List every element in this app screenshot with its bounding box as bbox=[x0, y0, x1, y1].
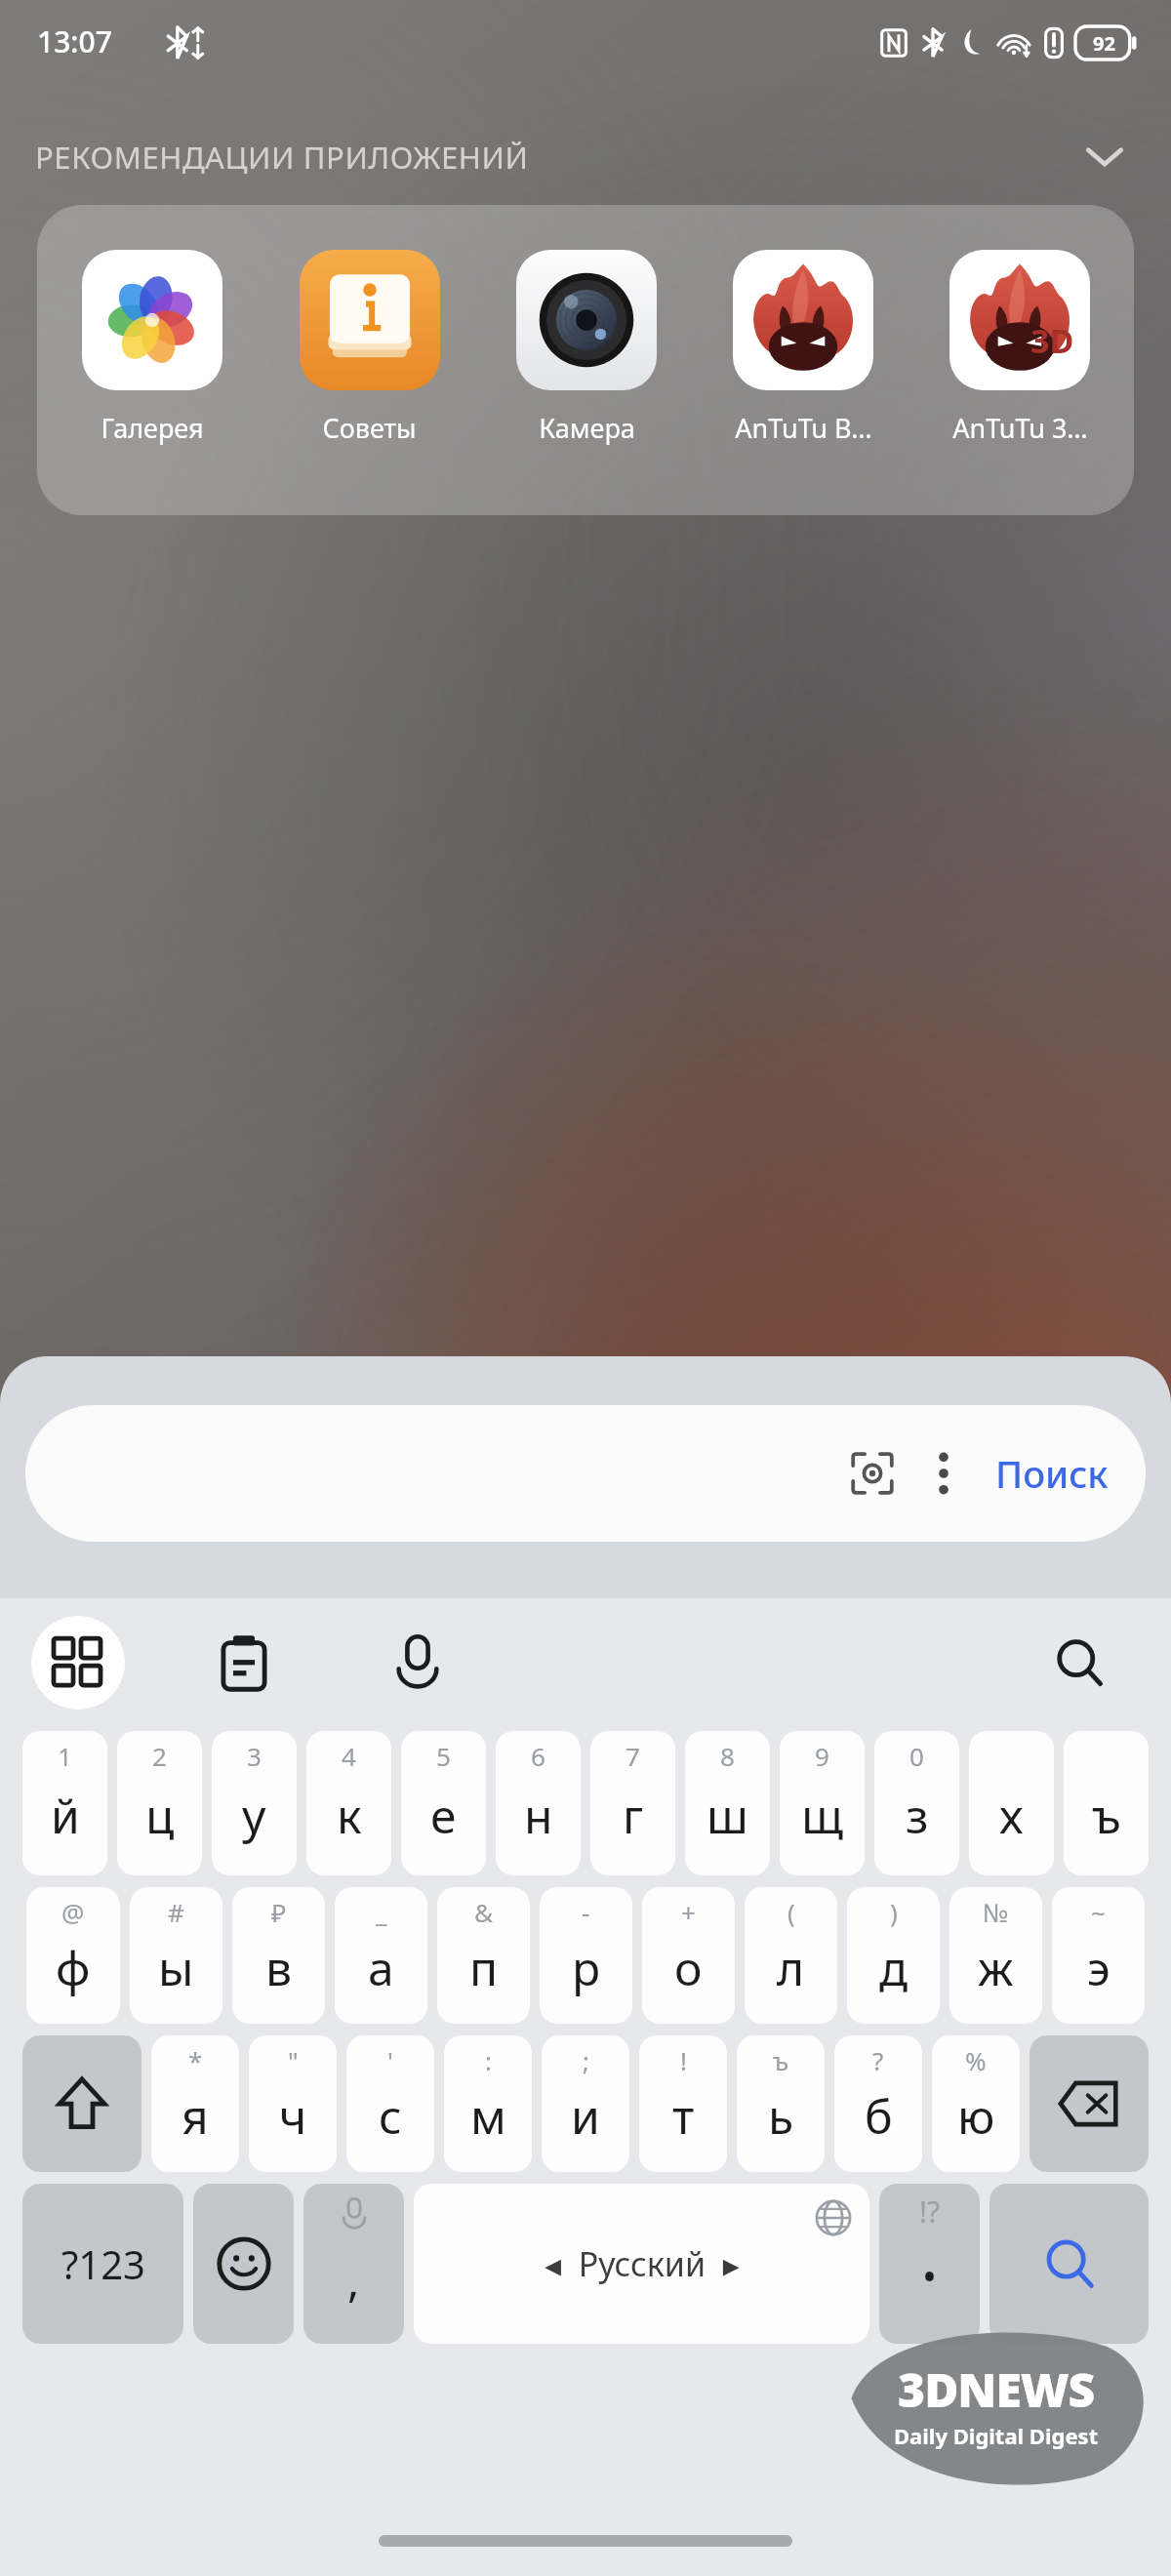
button[interactable]: Свернуть bbox=[1077, 130, 1132, 184]
button[interactable]: % bbox=[932, 2035, 1020, 2172]
button[interactable]: ◂ Русский ▸ bbox=[414, 2184, 869, 2344]
staticText: ) bbox=[890, 1895, 898, 1929]
staticText: ◂ Русский ▸ bbox=[545, 2241, 740, 2286]
button[interactable]: Поиск по изображению bbox=[841, 1442, 904, 1505]
staticText: л bbox=[777, 1936, 805, 1999]
staticText: щ bbox=[801, 1784, 844, 1847]
button[interactable]: Запятая bbox=[303, 2184, 404, 2344]
staticText: у bbox=[242, 1784, 266, 1847]
staticText: ы bbox=[158, 1936, 194, 1999]
button[interactable]: Удалить bbox=[1030, 2035, 1149, 2172]
button[interactable]: 1 bbox=[22, 1731, 107, 1875]
button[interactable]: _ bbox=[335, 1887, 427, 2024]
button[interactable]: 9 bbox=[780, 1731, 865, 1875]
button[interactable]: @ bbox=[26, 1887, 120, 2024]
staticText: • bbox=[922, 2249, 938, 2302]
button[interactable]: & bbox=[437, 1887, 530, 2024]
staticText: Поиск bbox=[995, 1448, 1109, 1499]
button[interactable]: ъ bbox=[737, 2035, 825, 2172]
button[interactable]: - bbox=[540, 1887, 632, 2024]
button[interactable]: ₽ bbox=[232, 1887, 325, 2024]
button[interactable]: ! bbox=[639, 2035, 727, 2172]
staticText: ? bbox=[872, 2043, 884, 2077]
staticText: 2 bbox=[152, 1739, 167, 1773]
button[interactable]: РЕКОМЕНДАЦИИ ПРИЛОЖЕНИЙ bbox=[0, 127, 1171, 187]
staticText: 1 bbox=[58, 1739, 72, 1773]
button[interactable]: ' bbox=[346, 2035, 434, 2172]
staticText: _ bbox=[376, 1895, 387, 1929]
button[interactable]: Камера bbox=[478, 250, 695, 515]
staticText: ' bbox=[387, 2043, 393, 2077]
button[interactable]: Буфер обмена bbox=[197, 1616, 291, 1710]
staticText: м bbox=[470, 2084, 506, 2148]
staticText: , bbox=[347, 2249, 360, 2311]
staticText: Советы bbox=[322, 410, 417, 446]
staticText: к bbox=[337, 1784, 362, 1847]
button[interactable]: ( bbox=[745, 1887, 837, 2024]
button[interactable]: Поиск bbox=[1032, 1616, 1126, 1710]
button[interactable]: Искать bbox=[989, 2184, 1149, 2344]
button[interactable]: + bbox=[642, 1887, 735, 2024]
staticText: г bbox=[623, 1784, 644, 1847]
button[interactable]: : bbox=[444, 2035, 532, 2172]
staticText: ь bbox=[768, 2084, 794, 2148]
button[interactable]: 2 bbox=[117, 1731, 202, 1875]
button[interactable]: Галерея bbox=[43, 250, 261, 515]
button[interactable]: № bbox=[949, 1887, 1042, 2024]
staticText: № bbox=[983, 1895, 1009, 1929]
staticText: х bbox=[999, 1784, 1024, 1847]
staticText: б bbox=[865, 2084, 893, 2148]
staticText: * bbox=[188, 2043, 203, 2077]
staticText: 3D bbox=[1030, 318, 1074, 363]
staticText: Камера bbox=[539, 410, 635, 446]
staticText: !? bbox=[919, 2192, 941, 2232]
button[interactable]: Ещё bbox=[915, 1445, 972, 1502]
staticText: & bbox=[474, 1895, 494, 1929]
button[interactable]: 3D bbox=[911, 250, 1128, 515]
button[interactable]: Голосовой ввод bbox=[371, 1616, 464, 1710]
button[interactable]: ~ bbox=[1052, 1887, 1145, 2024]
button[interactable]: Регистр bbox=[22, 2035, 141, 2172]
button[interactable]: 8 bbox=[685, 1731, 770, 1875]
button[interactable]: Цифры и символы bbox=[22, 2184, 183, 2344]
staticText: е bbox=[430, 1784, 457, 1847]
button[interactable]: * bbox=[151, 2035, 239, 2172]
button[interactable]: AnTuTu B… bbox=[695, 250, 911, 515]
button[interactable]: 5 bbox=[401, 1731, 486, 1875]
button[interactable]: Эмодзи bbox=[193, 2184, 294, 2344]
staticText: AnTuTu B… bbox=[735, 410, 872, 446]
button[interactable]: Панель инструментов bbox=[31, 1616, 125, 1710]
staticText: РЕКОМЕНДАЦИИ ПРИЛОЖЕНИЙ bbox=[35, 137, 529, 178]
button[interactable]: 6 bbox=[496, 1731, 581, 1875]
staticText: Daily Digital Digest bbox=[894, 2421, 1099, 2450]
button[interactable]: Советы bbox=[261, 250, 478, 515]
button[interactable]: 0 bbox=[874, 1731, 959, 1875]
button[interactable]: Поиск по изображению bbox=[25, 1405, 1146, 1542]
staticText: ( bbox=[787, 1895, 795, 1929]
button[interactable]: Точка bbox=[879, 2184, 980, 2344]
staticText: ш bbox=[707, 1784, 748, 1847]
staticText: з bbox=[906, 1784, 929, 1847]
button[interactable]: 3 bbox=[212, 1731, 297, 1875]
button[interactable]: # bbox=[130, 1887, 222, 2024]
staticText: ж bbox=[978, 1936, 1014, 1999]
button[interactable]: х bbox=[969, 1731, 1054, 1875]
button[interactable]: ; bbox=[542, 2035, 629, 2172]
staticText: 92 bbox=[1093, 30, 1115, 57]
button[interactable]: ъ bbox=[1064, 1731, 1149, 1875]
button[interactable]: 7 bbox=[590, 1731, 675, 1875]
button[interactable]: ? bbox=[834, 2035, 922, 2172]
staticText: AnTuTu 3… bbox=[952, 410, 1088, 446]
staticText: ъ bbox=[1092, 1784, 1121, 1847]
button[interactable]: 4 bbox=[306, 1731, 391, 1875]
staticText: 13:07 bbox=[37, 21, 112, 61]
staticText: ц bbox=[145, 1784, 175, 1847]
staticText: 3 bbox=[247, 1739, 262, 1773]
staticText: т bbox=[672, 2084, 695, 2148]
staticText: п bbox=[469, 1936, 499, 1999]
button[interactable]: Поиск bbox=[991, 1438, 1112, 1509]
staticText: 8 bbox=[720, 1739, 735, 1773]
staticText: ; bbox=[583, 2043, 589, 2077]
button[interactable]: ) bbox=[847, 1887, 940, 2024]
button[interactable]: " bbox=[249, 2035, 337, 2172]
